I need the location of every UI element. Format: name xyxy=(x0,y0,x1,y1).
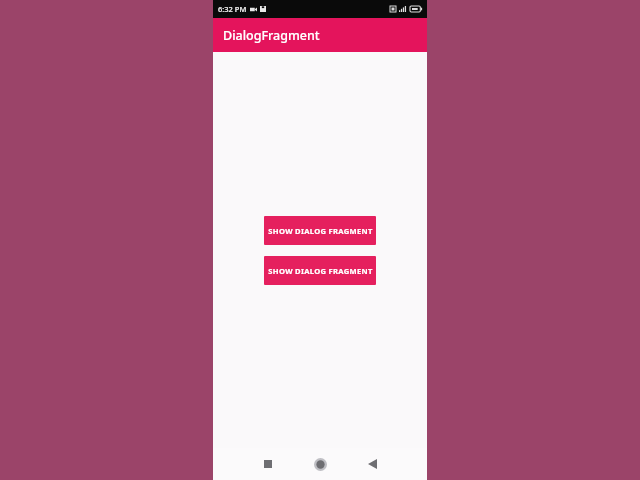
staticText: SHOW DIALOG FRAGMENT xyxy=(268,226,373,236)
staticText: 6:32 PM xyxy=(218,4,247,14)
button[interactable]: SHOW DIALOG FRAGMENT xyxy=(264,256,376,285)
button[interactable]: Recent apps xyxy=(257,453,279,475)
button[interactable]: SHOW DIALOG FRAGMENT xyxy=(264,216,376,245)
button[interactable]: Back xyxy=(361,453,383,475)
staticText: SHOW DIALOG FRAGMENT xyxy=(268,266,373,276)
button[interactable]: Home xyxy=(309,453,331,475)
staticText: DialogFragment xyxy=(223,27,320,44)
